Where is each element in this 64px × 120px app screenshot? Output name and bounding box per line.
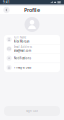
staticText: Sign Out	[26, 109, 38, 113]
staticText: Notifications	[14, 56, 31, 60]
staticText: Full Name	[14, 36, 27, 39]
staticText: Privacy & Data	[14, 66, 31, 69]
staticText: Email Address	[14, 45, 32, 49]
staticText: 9:41	[3, 0, 10, 4]
staticText: Profile	[24, 6, 40, 14]
button[interactable]: Notifications	[4, 54, 60, 63]
button[interactable]: Full Name	[4, 35, 60, 44]
button[interactable]: Sign Out	[4, 106, 60, 116]
button[interactable]: Email Address	[4, 44, 60, 53]
staticText: alex@mail.com	[14, 49, 31, 52]
staticText: Alex Morgan	[14, 40, 30, 43]
button[interactable]: Back	[2, 6, 10, 14]
button[interactable]: Privacy & Data	[4, 63, 60, 72]
